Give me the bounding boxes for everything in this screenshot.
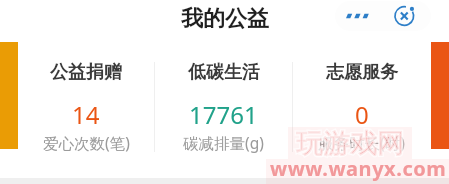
staticText: 服务时长(时) <box>318 132 405 153</box>
staticText: 爱心次数(笔) <box>43 132 130 153</box>
staticText: 14 <box>72 98 100 131</box>
button[interactable]: 公益捐赠 <box>18 33 154 178</box>
staticText: www.wanyx.com <box>270 155 447 182</box>
staticText: 碳减排量(g) <box>183 132 264 153</box>
button[interactable]: Close <box>389 1 431 31</box>
staticText: 0 <box>355 98 369 131</box>
button[interactable]: 低碳生活 <box>155 33 292 178</box>
staticText: 17761 <box>189 98 258 131</box>
staticText: 玩游戏网 <box>296 127 404 161</box>
staticText: 我的公益 <box>181 5 269 33</box>
staticText: 低碳生活 <box>188 61 260 84</box>
staticText: 志愿服务 <box>326 61 398 84</box>
button[interactable]: More options <box>337 1 381 31</box>
staticText: 公益捐赠 <box>50 61 122 84</box>
staticText: 玩游戏网 <box>296 127 404 161</box>
button[interactable]: 志愿服务 <box>293 33 430 178</box>
